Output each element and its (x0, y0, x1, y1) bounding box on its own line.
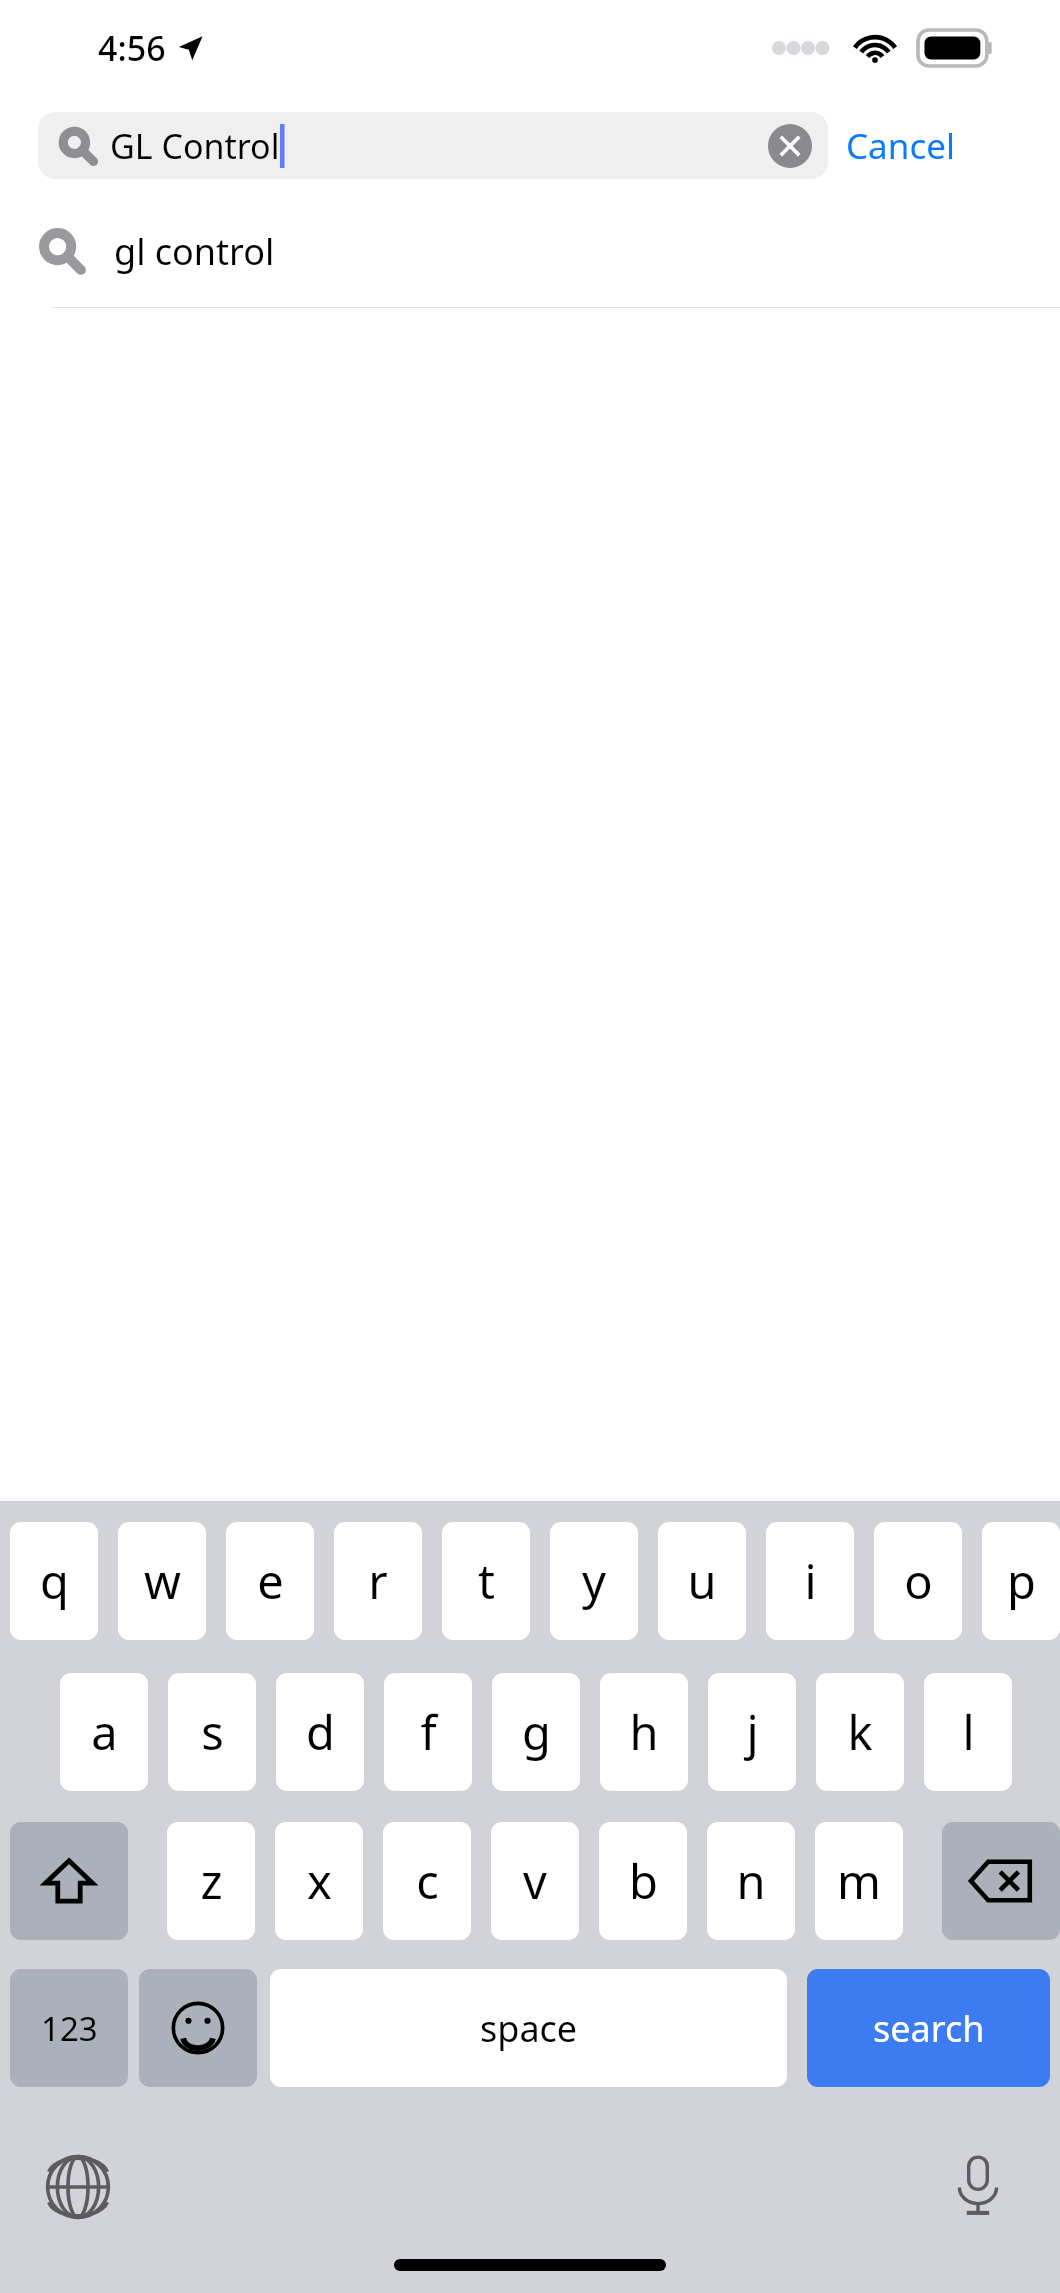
staticText: m (837, 1849, 881, 1913)
button[interactable]: l (924, 1673, 1012, 1791)
button[interactable]: f (384, 1673, 472, 1791)
button[interactable]: o (874, 1522, 962, 1640)
staticText: b (629, 1849, 658, 1913)
staticText: a (91, 1700, 118, 1764)
button[interactable]: t (442, 1522, 530, 1640)
staticText: 123 (41, 2006, 98, 2051)
staticText: u (687, 1549, 717, 1613)
button[interactable]: y (550, 1522, 638, 1640)
button[interactable]: 123 (10, 1969, 128, 2087)
staticText: y (582, 1549, 606, 1613)
staticText: e (257, 1549, 284, 1613)
button[interactable]: k (816, 1673, 904, 1791)
button[interactable]: Backspace (942, 1822, 1060, 1940)
staticText: o (904, 1549, 933, 1613)
button[interactable]: u (658, 1522, 746, 1640)
staticText: search (873, 2004, 985, 2053)
staticText: n (736, 1849, 766, 1913)
staticText: r (368, 1549, 388, 1613)
staticText: GL Control (110, 123, 280, 169)
staticText: 4:56 (98, 25, 166, 71)
button[interactable]: s (168, 1673, 256, 1791)
button[interactable]: Shift (10, 1822, 128, 1940)
button[interactable]: w (118, 1522, 206, 1640)
staticText: i (804, 1549, 817, 1613)
button[interactable]: v (491, 1822, 579, 1940)
staticText: d (306, 1700, 335, 1764)
staticText: s (201, 1700, 224, 1764)
button[interactable]: r (334, 1522, 422, 1640)
staticText: l (962, 1700, 975, 1764)
staticText: p (1007, 1549, 1036, 1613)
button[interactable]: gl control (0, 195, 1060, 307)
button[interactable]: q (10, 1522, 98, 1640)
staticText: v (523, 1849, 547, 1913)
button[interactable]: Cancel (846, 112, 955, 179)
button[interactable]: space (270, 1969, 787, 2087)
staticText: k (847, 1700, 873, 1764)
staticText: f (420, 1700, 437, 1764)
button[interactable]: n (707, 1822, 795, 1940)
staticText: gl control (114, 227, 275, 276)
button[interactable]: a (60, 1673, 148, 1791)
button[interactable]: m (815, 1822, 903, 1940)
staticText: z (200, 1849, 223, 1913)
staticText: space (480, 2004, 578, 2053)
button[interactable]: e (226, 1522, 314, 1640)
staticText: t (478, 1549, 495, 1613)
button[interactable]: GL Control (38, 112, 828, 179)
button[interactable]: p (982, 1522, 1060, 1640)
button[interactable]: Emoji (139, 1969, 257, 2087)
button[interactable]: x (275, 1822, 363, 1940)
button[interactable]: search (807, 1969, 1050, 2087)
staticText: w (144, 1549, 181, 1613)
button[interactable]: Dictate (936, 2143, 1020, 2227)
button[interactable]: j (708, 1673, 796, 1791)
staticText: j (746, 1700, 759, 1764)
button[interactable]: d (276, 1673, 364, 1791)
staticText: q (40, 1549, 69, 1613)
staticText: x (307, 1849, 332, 1913)
button[interactable]: b (599, 1822, 687, 1940)
button[interactable]: i (766, 1522, 854, 1640)
staticText: Cancel (846, 122, 955, 170)
staticText: c (416, 1849, 439, 1913)
staticText: g (522, 1700, 551, 1764)
button[interactable]: Clear text (764, 120, 816, 172)
button[interactable]: c (383, 1822, 471, 1940)
staticText: h (629, 1700, 659, 1764)
button[interactable]: h (600, 1673, 688, 1791)
button[interactable]: g (492, 1673, 580, 1791)
button[interactable]: Change keyboard language (36, 2145, 120, 2229)
button[interactable]: z (167, 1822, 255, 1940)
